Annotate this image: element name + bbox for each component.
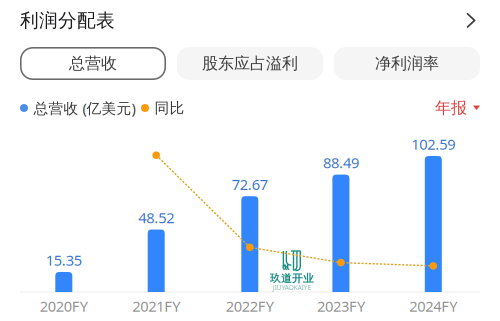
staticText: 2024FY bbox=[409, 296, 457, 316]
staticText: 净利润率 bbox=[375, 54, 439, 73]
button[interactable]: Open details bbox=[466, 13, 480, 28]
staticText: 15.35 bbox=[46, 250, 82, 270]
staticText: 2020FY bbox=[40, 296, 88, 316]
staticText: 102.59 bbox=[411, 134, 455, 154]
staticText: 股东应占溢利 bbox=[202, 54, 298, 73]
staticText: 2022FY bbox=[226, 296, 274, 316]
button[interactable]: 年报 bbox=[435, 98, 480, 118]
staticText: 利润分配表 bbox=[20, 9, 115, 32]
staticText: 72.67 bbox=[232, 174, 268, 194]
staticText: 88.49 bbox=[323, 153, 359, 172]
button[interactable]: 总营收 bbox=[20, 47, 166, 80]
staticText: 玖道开业 bbox=[270, 272, 314, 285]
staticText: 2023FY bbox=[317, 296, 365, 316]
staticText: 总营收 bbox=[69, 54, 117, 73]
button[interactable]: 股东应占溢利 bbox=[177, 47, 323, 80]
staticText: 48.52 bbox=[138, 208, 174, 227]
staticText: 同比 bbox=[154, 99, 184, 117]
button[interactable]: 净利润率 bbox=[334, 47, 480, 80]
staticText: 年报 bbox=[435, 98, 467, 118]
staticText: JIUYAOKAIYE bbox=[272, 283, 311, 292]
staticText: 总营收 (亿美元) bbox=[33, 98, 135, 118]
staticText: 2021FY bbox=[132, 296, 180, 316]
